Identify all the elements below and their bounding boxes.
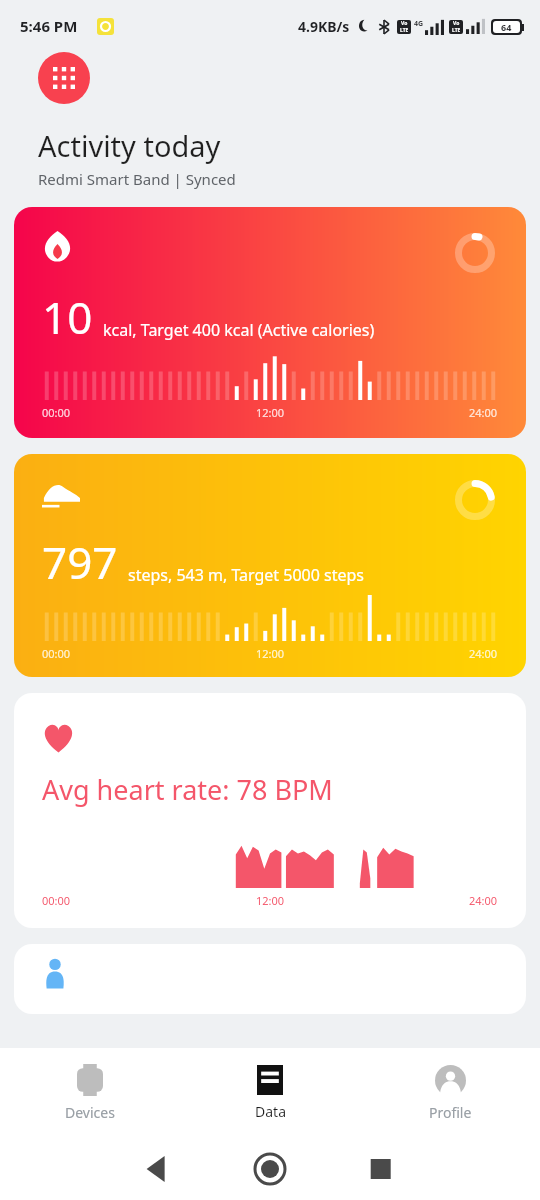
staticText: kcal, Target 400 kcal (Active calories) xyxy=(103,319,375,341)
staticText: Vo xyxy=(453,20,460,27)
staticText: 4.9KB/s xyxy=(298,17,350,36)
staticText: Activity today xyxy=(38,126,221,165)
button[interactable]: Data xyxy=(180,1048,360,1138)
staticText: 00:00 xyxy=(42,893,71,908)
staticText: Devices xyxy=(65,1103,115,1122)
staticText: 64 xyxy=(501,21,512,33)
button[interactable]: Avg heart rate: 78 BPM xyxy=(14,693,526,928)
button[interactable]: Profile xyxy=(360,1048,540,1138)
staticText: 10 xyxy=(42,287,93,347)
staticText: Vo xyxy=(401,20,408,27)
staticText: 5:46 PM xyxy=(20,16,78,36)
staticText: 12:00 xyxy=(256,405,285,420)
staticText: Redmi Smart Band | Synced xyxy=(38,169,236,189)
staticText: LTE xyxy=(452,27,461,34)
staticText: 12:00 xyxy=(256,893,285,908)
staticText: 00:00 xyxy=(42,405,71,420)
staticText: Data xyxy=(255,1102,286,1121)
staticText: 00:00 xyxy=(42,646,71,661)
button[interactable]: Devices xyxy=(0,1048,180,1138)
staticText: Avg heart rate: 78 BPM xyxy=(42,771,333,808)
staticText: 24:00 xyxy=(469,405,498,420)
staticText: 4G xyxy=(414,19,424,29)
staticText: 797 xyxy=(42,532,118,592)
button[interactable]: 797 xyxy=(14,454,526,677)
staticText: LTE xyxy=(400,27,409,34)
staticText: Profile xyxy=(429,1103,472,1122)
staticText: 24:00 xyxy=(469,893,498,908)
staticText: 12:00 xyxy=(256,646,285,661)
staticText: 24:00 xyxy=(469,646,498,661)
button[interactable]: Apps xyxy=(38,52,90,104)
button[interactable] xyxy=(14,944,526,1014)
button[interactable]: 10 xyxy=(14,207,526,438)
staticText: steps, 543 m, Target 5000 steps xyxy=(128,564,365,586)
